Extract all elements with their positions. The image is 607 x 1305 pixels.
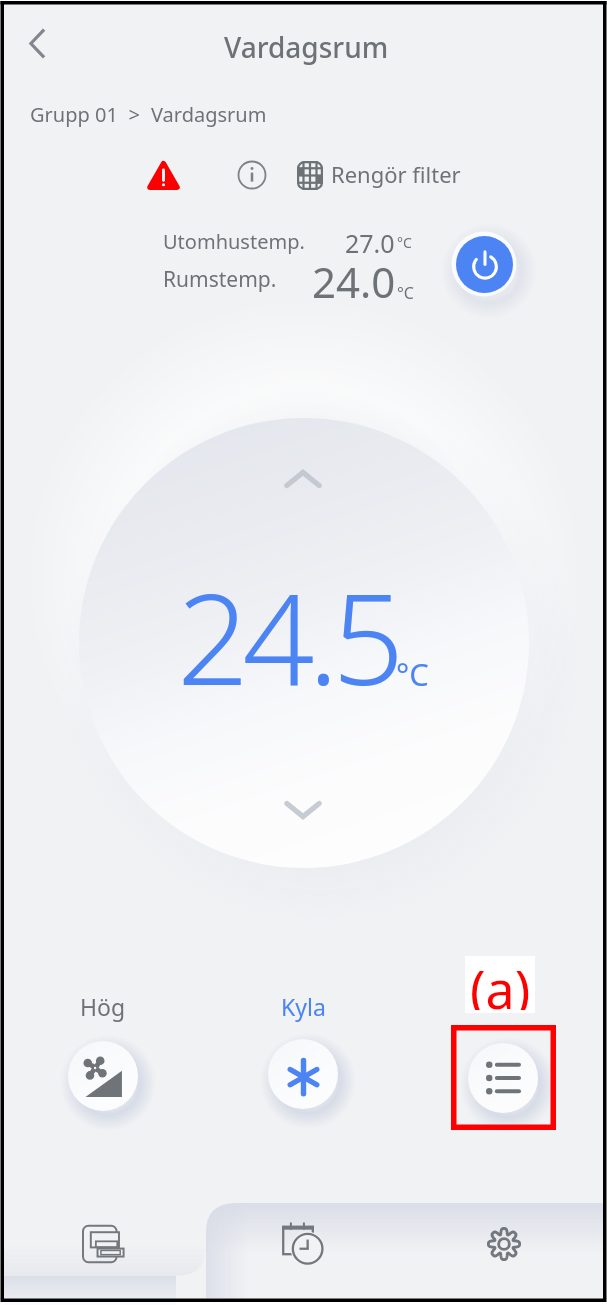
button[interactable]: Alarm bbox=[140, 153, 186, 199]
button[interactable]: Schedule bbox=[206, 1203, 408, 1303]
button[interactable]: Increase temperature bbox=[275, 451, 331, 507]
staticText: Vardagsrum bbox=[224, 28, 389, 66]
button[interactable]: Cooling mode bbox=[268, 1039, 338, 1109]
button[interactable]: Fan speed high bbox=[68, 1041, 138, 1111]
staticText: Rumstemp. bbox=[163, 265, 277, 294]
button[interactable]: Settings bbox=[408, 1203, 603, 1303]
staticText: Rengör filter bbox=[331, 159, 461, 189]
staticText: Kyla bbox=[281, 991, 326, 1022]
staticText: Vardagsrum bbox=[151, 101, 267, 128]
staticText: (a) bbox=[470, 953, 531, 1010]
staticText: 24.0 bbox=[312, 253, 396, 310]
button[interactable]: Power bbox=[456, 236, 513, 293]
staticText: °C bbox=[397, 233, 412, 252]
staticText: Grupp 01 bbox=[30, 101, 118, 128]
staticText: °C bbox=[396, 653, 429, 695]
button[interactable]: Information bbox=[229, 152, 275, 198]
button[interactable]: Decrease temperature bbox=[275, 782, 331, 838]
staticText: 24.5 bbox=[177, 550, 398, 722]
button[interactable]: Devices bbox=[4, 1203, 206, 1303]
staticText: Hög bbox=[80, 991, 126, 1022]
button[interactable]: Back bbox=[9, 15, 65, 71]
staticText: > bbox=[118, 101, 151, 128]
staticText: Utomhustemp. bbox=[163, 228, 305, 255]
staticText: °C bbox=[397, 282, 414, 304]
button[interactable]: Rengör filter bbox=[297, 152, 461, 198]
staticText: 27.0 bbox=[345, 226, 395, 260]
button[interactable]: More options bbox=[468, 1043, 538, 1113]
